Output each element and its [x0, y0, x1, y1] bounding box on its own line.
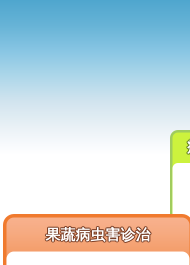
button[interactable]: 果蔬病虫害诊治: [3, 214, 190, 265]
staticText: 病虫害: [186, 137, 190, 157]
staticText: 病虫害: [188, 137, 190, 157]
staticText: 果蔬病虫害诊治: [45, 227, 150, 245]
staticText: 病虫害: [188, 137, 190, 156]
staticText: 果蔬病虫害诊治: [44, 226, 149, 244]
staticText: 病虫害: [187, 137, 190, 156]
staticText: 病虫害: [187, 136, 190, 155]
staticText: 病虫害: [186, 136, 190, 156]
staticText: 果蔬病虫害诊治: [46, 226, 151, 244]
staticText: 病虫害: [187, 138, 190, 157]
staticText: 果蔬病虫害诊治: [46, 226, 151, 244]
staticText: 病虫害: [186, 137, 190, 156]
staticText: 果蔬病虫害诊治: [45, 226, 150, 244]
staticText: 果蔬病虫害诊治: [45, 225, 150, 243]
staticText: 果蔬病虫害诊治: [45, 226, 150, 244]
staticText: 果蔬病虫害诊治: [45, 225, 150, 243]
staticText: 果蔬病虫害诊治: [46, 225, 151, 243]
staticText: 病虫害: [188, 136, 190, 156]
button[interactable]: 病虫害: [170, 130, 190, 265]
